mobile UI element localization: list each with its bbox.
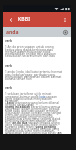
button[interactable]: More options (60, 15, 69, 24)
staticText: KBBI (18, 16, 31, 23)
staticText: verb (5, 64, 12, 68)
button[interactable]: Navigate up (7, 16, 14, 23)
staticText: anda (6, 29, 19, 36)
staticText: verb (5, 86, 12, 90)
button[interactable]: Pronounce (61, 28, 69, 36)
staticText: 1 seluban jarisifone ujj ib mirust umpam… (5, 92, 63, 134)
staticText: 1 An da pron sapaan untuk orang kedua ya… (5, 45, 63, 58)
staticText: 1 anda ( inda, ida) kata tertentu hormat… (5, 70, 63, 81)
staticText: verb (5, 39, 12, 43)
